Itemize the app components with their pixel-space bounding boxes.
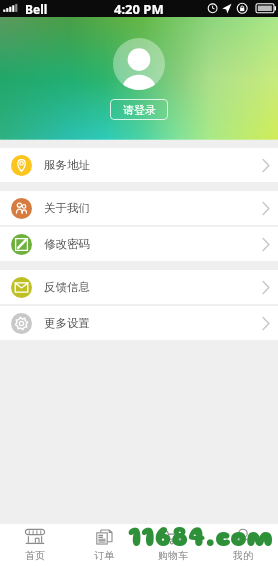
staticText: 4:20 PM (114, 0, 164, 17)
button[interactable]: 首页 (0, 524, 69, 566)
staticText: 我的 (233, 549, 253, 562)
button[interactable]: 修改密码 (0, 227, 278, 261)
staticText: 修改密码 (44, 237, 90, 251)
button[interactable]: 请登录 (110, 99, 168, 120)
staticText: 反馈信息 (44, 280, 90, 294)
staticText: 服务地址 (44, 158, 90, 172)
button[interactable]: 服务地址 (0, 148, 278, 182)
staticText: 请登录 (123, 103, 156, 117)
staticText: 首页 (25, 549, 45, 562)
button[interactable]: 关于我们 (0, 191, 278, 225)
button[interactable]: 更多设置 (0, 306, 278, 340)
staticText: 订单 (94, 549, 114, 562)
staticText: Bell (25, 1, 48, 17)
staticText: 购物车 (158, 549, 188, 562)
button[interactable]: 我的 (208, 524, 278, 566)
button[interactable]: 购物车 (138, 524, 208, 566)
staticText: 更多设置 (44, 316, 90, 330)
button[interactable]: 反馈信息 (0, 270, 278, 304)
button[interactable]: Avatar (113, 38, 165, 90)
button[interactable]: 订单 (69, 524, 138, 566)
staticText: 关于我们 (44, 201, 90, 215)
staticText: 11684.com (128, 520, 274, 554)
